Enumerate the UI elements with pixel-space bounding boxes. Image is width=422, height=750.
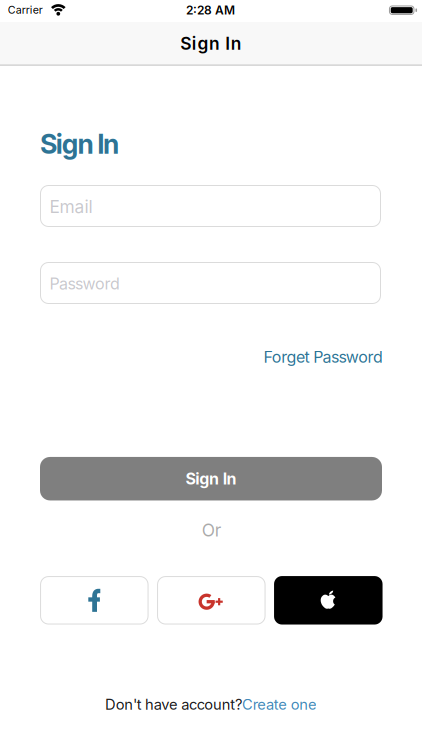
staticText: Forget Password	[263, 348, 383, 366]
staticText: Sign In	[40, 128, 119, 160]
button[interactable]: Create one	[242, 696, 317, 713]
staticText: Email	[49, 197, 92, 217]
button[interactable]	[274, 576, 383, 624]
button[interactable]	[40, 576, 148, 624]
staticText: Sign In	[185, 469, 237, 488]
staticText: Carrier	[8, 3, 43, 16]
button[interactable]: Forget Password	[263, 348, 383, 366]
staticText: Don't have account?	[105, 696, 242, 713]
staticText: Create one	[242, 696, 317, 713]
staticText: 2:28 AM	[186, 3, 235, 17]
staticText: Password	[49, 274, 120, 293]
staticText: Sign In	[180, 33, 242, 54]
staticText: Or	[202, 520, 222, 540]
button[interactable]: Sign In	[40, 457, 382, 500]
textField[interactable]	[49, 270, 381, 296]
button[interactable]	[157, 576, 266, 624]
textField[interactable]	[49, 193, 381, 219]
